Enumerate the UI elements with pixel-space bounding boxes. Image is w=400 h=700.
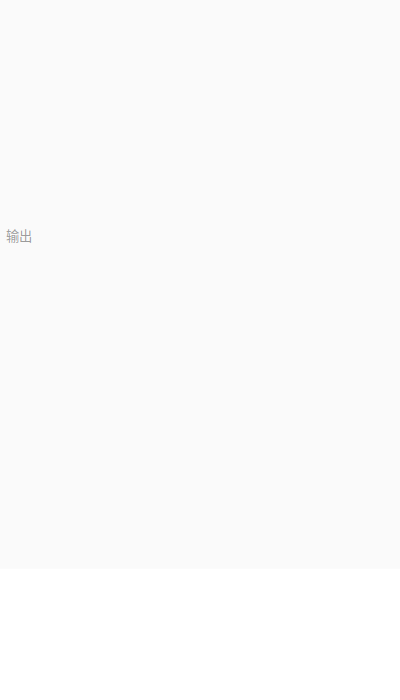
staticText: 输出: [6, 225, 32, 245]
button[interactable]: 输出: [6, 225, 394, 700]
